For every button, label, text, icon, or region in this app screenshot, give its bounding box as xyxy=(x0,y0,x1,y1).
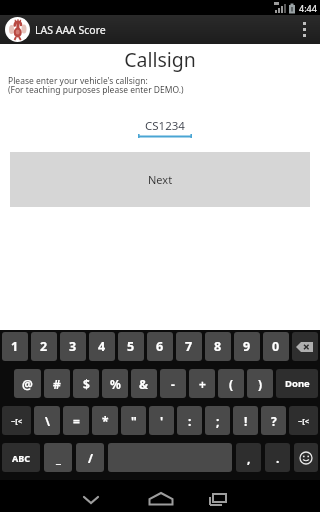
staticText: @ xyxy=(22,376,33,392)
button[interactable]: \ xyxy=(34,406,60,435)
button[interactable]: ' xyxy=(149,406,174,435)
button[interactable]: ) xyxy=(247,369,273,398)
staticText: , xyxy=(247,450,251,466)
button[interactable]: / xyxy=(76,443,104,472)
button[interactable]: Next xyxy=(10,152,310,207)
button[interactable]: ~[< xyxy=(2,406,31,435)
staticText: $ xyxy=(83,376,90,392)
staticText: - xyxy=(171,376,175,392)
button[interactable]: & xyxy=(131,369,157,398)
button[interactable]: 2 xyxy=(31,332,57,361)
staticText: ' xyxy=(160,413,164,429)
staticText: 1 xyxy=(11,338,19,355)
staticText: : xyxy=(188,413,192,429)
button[interactable]: = xyxy=(63,406,89,435)
button[interactable]: ? xyxy=(261,406,286,435)
button[interactable] xyxy=(143,490,179,512)
button[interactable]: - xyxy=(160,369,186,398)
staticText: 7 xyxy=(185,338,193,355)
button[interactable]: 1 xyxy=(2,332,28,361)
button[interactable]: : xyxy=(177,406,202,435)
button[interactable]: 4 xyxy=(89,332,115,361)
button[interactable]: $ xyxy=(73,369,99,398)
button[interactable]: Done xyxy=(276,369,318,398)
button[interactable] xyxy=(294,443,318,472)
button[interactable]: , xyxy=(236,443,261,472)
staticText: ~[< xyxy=(11,416,23,426)
staticText: / xyxy=(88,450,93,466)
staticText: Please enter your vehicle's callsign: (F… xyxy=(8,75,184,96)
staticText: 5 xyxy=(127,338,135,355)
button[interactable] xyxy=(201,489,237,511)
staticText: # xyxy=(53,376,61,392)
staticText: " xyxy=(131,413,137,429)
button[interactable]: ABC xyxy=(2,443,40,472)
button[interactable]: 3 xyxy=(60,332,86,361)
button[interactable]: 0 xyxy=(263,332,289,361)
staticText: ? xyxy=(271,413,277,429)
staticText: ( xyxy=(229,376,234,392)
button[interactable]: ! xyxy=(233,406,258,435)
staticText: 2 xyxy=(40,338,48,355)
staticText: * xyxy=(102,413,109,429)
staticText: . xyxy=(276,450,280,466)
button[interactable]: ~[< xyxy=(289,406,318,435)
staticText: ~[< xyxy=(298,416,310,426)
button[interactable]: ( xyxy=(218,369,244,398)
staticText: Next xyxy=(148,172,173,187)
button[interactable]: 8 xyxy=(205,332,231,361)
staticText: % xyxy=(110,376,121,392)
staticText: 4 xyxy=(98,338,106,355)
staticText: = xyxy=(73,413,80,429)
staticText: 0 xyxy=(272,338,280,355)
staticText: 4:44 xyxy=(299,2,317,14)
staticText: 6 xyxy=(156,338,164,355)
button[interactable]: _ xyxy=(44,443,72,472)
staticText: & xyxy=(139,376,149,392)
staticText: LAS AAA Score xyxy=(35,23,106,37)
button[interactable]: 9 xyxy=(234,332,260,361)
staticText: 8 xyxy=(214,338,222,355)
button[interactable]: * xyxy=(92,406,118,435)
staticText: \ xyxy=(45,413,50,429)
button[interactable]: 6 xyxy=(147,332,173,361)
staticText: ; xyxy=(216,413,220,429)
staticText: Done xyxy=(285,377,310,390)
staticText: ! xyxy=(244,413,248,429)
button[interactable]: ; xyxy=(205,406,230,435)
button[interactable]: # xyxy=(44,369,70,398)
button[interactable] xyxy=(292,332,318,361)
button[interactable]: + xyxy=(189,369,215,398)
staticText: ) xyxy=(258,376,263,392)
staticText: ABC xyxy=(12,452,30,464)
staticText: + xyxy=(199,376,206,392)
staticText: CS1234 xyxy=(145,118,185,134)
staticText: 9 xyxy=(243,338,251,355)
button[interactable]: % xyxy=(102,369,128,398)
button[interactable]: 5 xyxy=(118,332,144,361)
button[interactable]: " xyxy=(121,406,146,435)
button[interactable] xyxy=(73,489,109,511)
button[interactable]: @ xyxy=(14,369,41,398)
button[interactable] xyxy=(288,15,320,44)
staticText: Callsign xyxy=(0,46,320,73)
button[interactable]: . xyxy=(265,443,290,472)
staticText: 3 xyxy=(69,338,77,355)
button[interactable]: 7 xyxy=(176,332,202,361)
staticText: _ xyxy=(56,450,61,466)
